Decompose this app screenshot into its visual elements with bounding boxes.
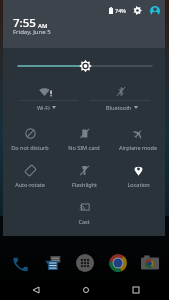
button[interactable]: User account — [149, 5, 160, 16]
button[interactable]: Messages — [43, 253, 63, 273]
button[interactable]: Phone — [10, 253, 30, 273]
button[interactable]: No SIM card — [57, 122, 111, 151]
button[interactable]: Cast — [57, 196, 111, 225]
staticText: Auto-rotate — [15, 181, 45, 188]
button[interactable]: Chrome — [108, 253, 128, 273]
staticText: Flashlight — [72, 181, 97, 188]
button[interactable]: Flashlight — [57, 159, 111, 188]
button[interactable]: Apps — [75, 253, 95, 273]
staticText: Airplane mode — [119, 144, 157, 151]
button[interactable]: Auto-rotate — [3, 159, 57, 188]
button[interactable]: Recents — [126, 280, 146, 300]
staticText: Friday, June 5 — [13, 28, 51, 36]
staticText: AM — [38, 22, 48, 30]
staticText: 74% — [115, 7, 126, 14]
button[interactable]: Airplane mode — [111, 122, 165, 151]
staticText: Location — [127, 181, 150, 188]
button[interactable]: Home — [76, 280, 96, 300]
staticText: 7:55 — [13, 15, 36, 31]
button[interactable]: Back — [26, 280, 46, 300]
button[interactable]: Settings — [132, 5, 143, 16]
staticText: Bluetooth — [106, 104, 132, 111]
button[interactable]: Wi-Fi — [3, 80, 84, 111]
button[interactable]: Brightness — [3, 48, 165, 80]
staticText: Cast — [78, 218, 90, 225]
button[interactable]: Do not disturb — [3, 122, 57, 151]
button[interactable]: Bluetooth — [84, 80, 165, 111]
staticText: Do not disturb — [11, 144, 49, 151]
staticText: Wi-Fi — [37, 104, 50, 111]
button[interactable]: Location — [111, 159, 165, 188]
button[interactable]: Camera — [140, 253, 160, 273]
staticText: No SIM card — [68, 144, 100, 151]
